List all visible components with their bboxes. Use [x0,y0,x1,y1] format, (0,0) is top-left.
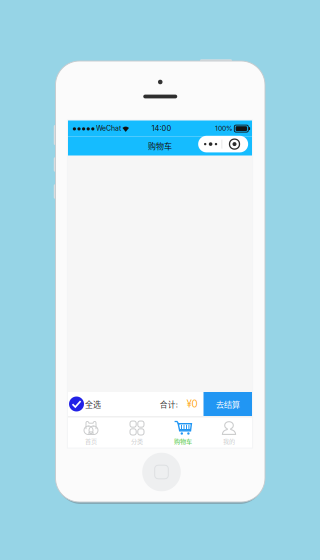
staticText: 分类 [131,437,143,445]
staticText: 我的 [223,437,235,445]
button[interactable]: More options and close mini program [198,136,248,152]
staticText: 14:00 [151,124,171,133]
staticText: 首页 [85,437,97,445]
staticText: ¥0 [186,398,197,410]
button[interactable]: 去结算 [203,392,252,416]
staticText: WeChat [96,124,121,132]
button[interactable]: 全选 [68,392,114,416]
staticText: 全选 [85,398,101,410]
staticText: 合计: [160,399,178,410]
button[interactable]: 首页 [68,416,114,447]
button[interactable]: 购物车 [160,416,206,447]
button[interactable]: 分类 [114,416,160,447]
button[interactable]: 我的 [206,416,252,447]
staticText: 去结算 [216,398,240,410]
staticText: 购物车 [174,437,192,445]
staticText: 100% [215,124,233,132]
staticText: 购物车 [148,140,172,152]
